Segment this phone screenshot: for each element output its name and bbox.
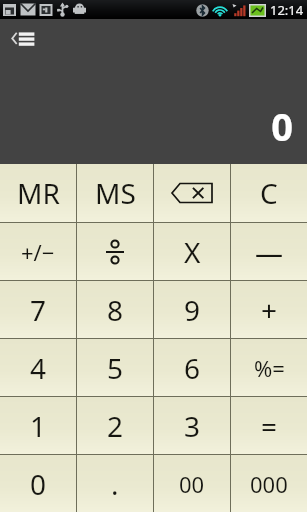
staticText: — [255, 233, 284, 271]
staticText: 5 [107, 349, 124, 387]
staticText: = [261, 407, 278, 445]
button[interactable]: Backspace [154, 164, 230, 222]
staticText: 12:14 [270, 1, 304, 19]
staticText: + [261, 291, 278, 329]
button[interactable]: Divide [77, 223, 153, 280]
button[interactable]: 9 [154, 281, 230, 338]
staticText: 9 [184, 291, 201, 329]
staticText: %= [254, 353, 285, 383]
staticText: 8 [107, 291, 124, 329]
staticText: . [111, 465, 119, 503]
button[interactable]: %= [231, 339, 307, 396]
button[interactable]: = [231, 397, 307, 454]
button[interactable]: + [231, 281, 307, 338]
button[interactable]: 000 [231, 455, 307, 512]
button[interactable]: 6 [154, 339, 230, 396]
staticText: C [260, 174, 278, 212]
staticText: 00 [179, 469, 205, 499]
button[interactable]: 5 [77, 339, 153, 396]
staticText: 000 [250, 469, 288, 499]
staticText: 1 [30, 407, 47, 445]
staticText: 0 [271, 100, 293, 152]
staticText: 4 [30, 349, 47, 387]
button[interactable]: 8 [77, 281, 153, 338]
staticText: 3 [184, 407, 201, 445]
staticText: MS [95, 174, 136, 212]
button[interactable]: . [77, 455, 153, 512]
staticText: 6 [184, 349, 201, 387]
button[interactable]: C [231, 164, 307, 222]
button[interactable]: 00 [154, 455, 230, 512]
button[interactable]: 7 [0, 281, 76, 338]
button[interactable]: MR [0, 164, 76, 222]
button[interactable]: 2 [77, 397, 153, 454]
staticText: MR [17, 174, 60, 212]
button[interactable]: 3 [154, 397, 230, 454]
button[interactable]: Menu [4, 21, 48, 55]
staticText: 7 [30, 291, 47, 329]
button[interactable]: MS [77, 164, 153, 222]
button[interactable]: 1 [0, 397, 76, 454]
button[interactable]: 4 [0, 339, 76, 396]
staticText: X [184, 233, 201, 271]
button[interactable]: X [154, 223, 230, 280]
staticText: 2 [107, 407, 124, 445]
button[interactable]: +/− [0, 223, 76, 280]
button[interactable]: — [231, 223, 307, 280]
button[interactable]: 0 [0, 455, 76, 512]
staticText: +/− [21, 237, 55, 267]
staticText: 0 [30, 465, 47, 503]
